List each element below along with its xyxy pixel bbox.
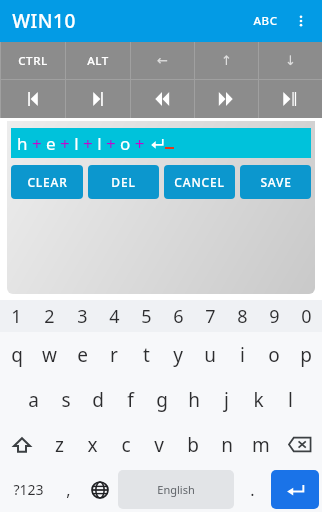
staticText: m xyxy=(252,432,270,458)
staticText: l xyxy=(288,387,293,413)
button[interactable]: a xyxy=(17,377,50,422)
button[interactable]: Change language xyxy=(84,470,115,509)
button[interactable]: ?123 xyxy=(3,470,53,509)
button[interactable]: o xyxy=(258,332,290,377)
button[interactable]: Fast forward xyxy=(194,80,258,118)
button[interactable]: English xyxy=(118,470,234,509)
button[interactable]: More options xyxy=(286,6,316,36)
staticText: v xyxy=(154,432,164,458)
staticText: f xyxy=(127,387,134,413)
staticText: o xyxy=(268,342,280,368)
staticText: b xyxy=(187,432,199,458)
staticText: , xyxy=(66,479,71,501)
staticText: j xyxy=(224,387,229,413)
button[interactable]: 5 xyxy=(130,300,162,332)
button[interactable]: b xyxy=(176,422,210,467)
button[interactable]: z xyxy=(43,422,76,467)
button[interactable]: s xyxy=(50,377,82,422)
button[interactable]: 6 xyxy=(162,300,194,332)
button[interactable]: ← xyxy=(130,42,194,79)
staticText: d xyxy=(92,387,104,413)
button[interactable]: 1 xyxy=(0,300,33,332)
staticText: ?123 xyxy=(13,480,44,499)
button[interactable]: n xyxy=(210,422,244,467)
button[interactable]: e xyxy=(66,332,98,377)
button[interactable]: r xyxy=(98,332,130,377)
button[interactable]: CTRL xyxy=(0,42,65,79)
button[interactable]: CLEAR xyxy=(11,165,83,199)
button[interactable]: , xyxy=(53,470,84,509)
button[interactable]: d xyxy=(82,377,114,422)
button[interactable]: Previous track xyxy=(0,80,65,118)
button[interactable]: j xyxy=(210,377,242,422)
button[interactable]: 4 xyxy=(98,300,130,332)
button[interactable]: Play or pause xyxy=(258,80,322,118)
staticText: w xyxy=(42,342,57,368)
staticText: CLEAR xyxy=(27,174,68,190)
button[interactable]: . xyxy=(237,470,268,509)
staticText: s xyxy=(61,387,71,413)
button[interactable]: ↑ xyxy=(194,42,258,79)
staticText: n xyxy=(221,432,233,458)
staticText: WIN10 xyxy=(12,8,76,34)
staticText: k xyxy=(253,387,264,413)
staticText: i xyxy=(240,342,245,368)
button[interactable]: Backspace xyxy=(278,422,322,467)
staticText: DEL xyxy=(111,174,136,190)
button[interactable]: p xyxy=(290,332,322,377)
button[interactable]: i xyxy=(226,332,258,377)
staticText: g xyxy=(156,387,168,413)
staticText: h xyxy=(188,387,200,413)
button[interactable]: m xyxy=(244,422,278,467)
button[interactable]: ABC xyxy=(245,7,286,35)
button[interactable]: Next track xyxy=(65,80,130,118)
staticText: r xyxy=(110,342,118,368)
button[interactable]: x xyxy=(76,422,109,467)
staticText: a xyxy=(28,387,39,413)
button[interactable]: Rewind xyxy=(130,80,194,118)
staticText: 6 xyxy=(173,304,184,329)
button[interactable]: c xyxy=(109,422,142,467)
button[interactable]: g xyxy=(146,377,178,422)
button[interactable]: 8 xyxy=(226,300,258,332)
button[interactable]: k xyxy=(242,377,274,422)
button[interactable]: l xyxy=(274,377,306,422)
staticText: English xyxy=(157,482,195,497)
staticText: ABC xyxy=(253,13,278,29)
staticText: t xyxy=(143,342,150,368)
button[interactable]: ↓ xyxy=(258,42,322,79)
staticText: ← xyxy=(157,53,168,68)
staticText: p xyxy=(300,342,312,368)
button[interactable]: h xyxy=(178,377,210,422)
button[interactable]: ALT xyxy=(65,42,130,79)
button[interactable]: DEL xyxy=(88,165,159,199)
button[interactable]: Shift xyxy=(0,422,43,467)
staticText: 1 xyxy=(11,304,22,329)
button[interactable]: h + e + l + l + o + xyxy=(11,128,311,158)
staticText: h + e + l + l + o + xyxy=(17,132,149,155)
button[interactable]: 0 xyxy=(290,300,322,332)
button[interactable]: q xyxy=(0,332,33,377)
button[interactable]: f xyxy=(114,377,146,422)
staticText: SAVE xyxy=(260,174,292,190)
button[interactable]: y xyxy=(162,332,194,377)
button[interactable]: 3 xyxy=(66,300,98,332)
staticText: 3 xyxy=(77,304,88,329)
button[interactable]: 9 xyxy=(258,300,290,332)
staticText: u xyxy=(204,342,216,368)
staticText: c xyxy=(121,432,131,458)
button[interactable]: u xyxy=(194,332,226,377)
button[interactable]: 7 xyxy=(194,300,226,332)
staticText: ↑ xyxy=(221,53,232,68)
button[interactable]: 2 xyxy=(33,300,66,332)
staticText: ALT xyxy=(87,53,109,69)
button[interactable]: SAVE xyxy=(240,165,311,199)
staticText: x xyxy=(87,432,98,458)
staticText: 0 xyxy=(301,304,312,329)
button[interactable]: CANCEL xyxy=(164,165,235,199)
staticText: 7 xyxy=(205,304,216,329)
button[interactable]: t xyxy=(130,332,162,377)
button[interactable]: Enter xyxy=(271,470,319,509)
button[interactable]: v xyxy=(142,422,176,467)
button[interactable]: w xyxy=(33,332,66,377)
